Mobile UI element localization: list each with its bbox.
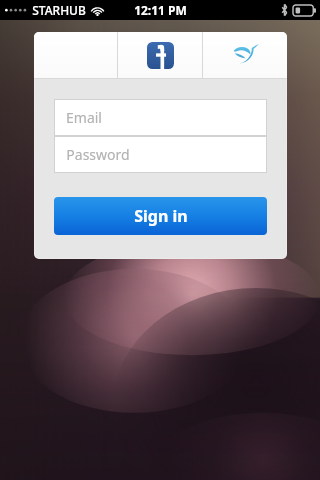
button[interactable]: Sign in	[54, 197, 267, 235]
button[interactable]: Email	[54, 99, 267, 136]
staticText: 12:11 PM	[134, 2, 187, 18]
button[interactable]: Sign in with Twitter	[203, 32, 287, 78]
staticText: Sign in	[134, 205, 188, 227]
staticText: Password	[66, 145, 130, 164]
staticText: STARHUB	[32, 2, 86, 18]
button[interactable]: Sign in with Facebook	[118, 32, 202, 78]
staticText: Email	[66, 108, 102, 127]
button[interactable]: Password	[54, 136, 267, 173]
